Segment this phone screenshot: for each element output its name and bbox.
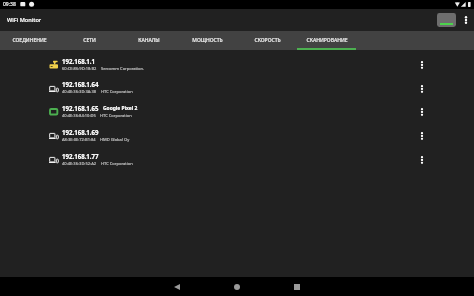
- button[interactable]: СКАНИРОВАНИЕ: [297, 31, 356, 50]
- button[interactable]: More options: [456, 9, 474, 31]
- button[interactable]: 192.168.1.69: [0, 124, 474, 148]
- staticText: СЕТИ: [83, 37, 96, 44]
- button[interactable]: 192.168.1.77: [0, 148, 474, 172]
- button[interactable]: Device options: [410, 124, 430, 148]
- staticText: HTC Corporation: [101, 161, 133, 167]
- button[interactable]: СОЕДИНЕНИЕ: [0, 31, 59, 50]
- staticText: 40:4E:36:3D:3A:38: [62, 89, 97, 95]
- staticText: МОЩНОСТЬ: [192, 37, 223, 44]
- staticText: Google Pixel 2: [103, 105, 138, 112]
- button[interactable]: Device options: [410, 148, 430, 172]
- button[interactable]: 192.168.1.1: [0, 53, 474, 77]
- staticText: 192.168.1.69: [62, 128, 99, 136]
- staticText: 40:4E:36:3D:52:A2: [62, 161, 97, 167]
- staticText: 192.168.1.1: [62, 57, 96, 65]
- staticText: HTC Corporation: [100, 113, 132, 119]
- button[interactable]: Recent apps: [280, 277, 314, 296]
- staticText: HMD Global Oy: [100, 137, 130, 143]
- staticText: 60:CE:86:9D:18:B2: [62, 66, 97, 72]
- button[interactable]: МОЩНОСТЬ: [178, 31, 237, 50]
- staticText: WiFi Monitor: [7, 16, 42, 24]
- button[interactable]: СЕТИ: [59, 31, 119, 50]
- button[interactable]: Device options: [410, 100, 430, 124]
- staticText: HTC Corporation: [101, 89, 133, 95]
- button[interactable]: WiFi signal level: [437, 13, 456, 27]
- staticText: A8:3E:0E:72:B1:84: [62, 137, 96, 143]
- staticText: 192.168.1.65: [62, 104, 99, 112]
- button[interactable]: 192.168.1.64: [0, 77, 474, 100]
- staticText: 09:38: [3, 1, 16, 8]
- staticText: СКАНИРОВАНИЕ: [306, 37, 348, 44]
- staticText: СОЕДИНЕНИЕ: [12, 37, 47, 44]
- button[interactable]: Device options: [410, 77, 430, 100]
- button[interactable]: СКОРОСТЬ: [237, 31, 297, 50]
- staticText: СКОРОСТЬ: [254, 37, 281, 44]
- button[interactable]: Home: [220, 277, 254, 296]
- staticText: КАНАЛЫ: [138, 37, 160, 44]
- staticText: Sercomm Corporation.: [101, 66, 145, 72]
- staticText: 40:4E:36:84:10:D5: [62, 113, 96, 119]
- staticText: 192.168.1.77: [62, 152, 99, 160]
- button[interactable]: Back: [160, 277, 194, 296]
- button[interactable]: 192.168.1.65: [0, 100, 474, 124]
- button[interactable]: Device options: [410, 53, 430, 77]
- staticText: 192.168.1.64: [62, 80, 99, 88]
- button[interactable]: КАНАЛЫ: [119, 31, 178, 50]
